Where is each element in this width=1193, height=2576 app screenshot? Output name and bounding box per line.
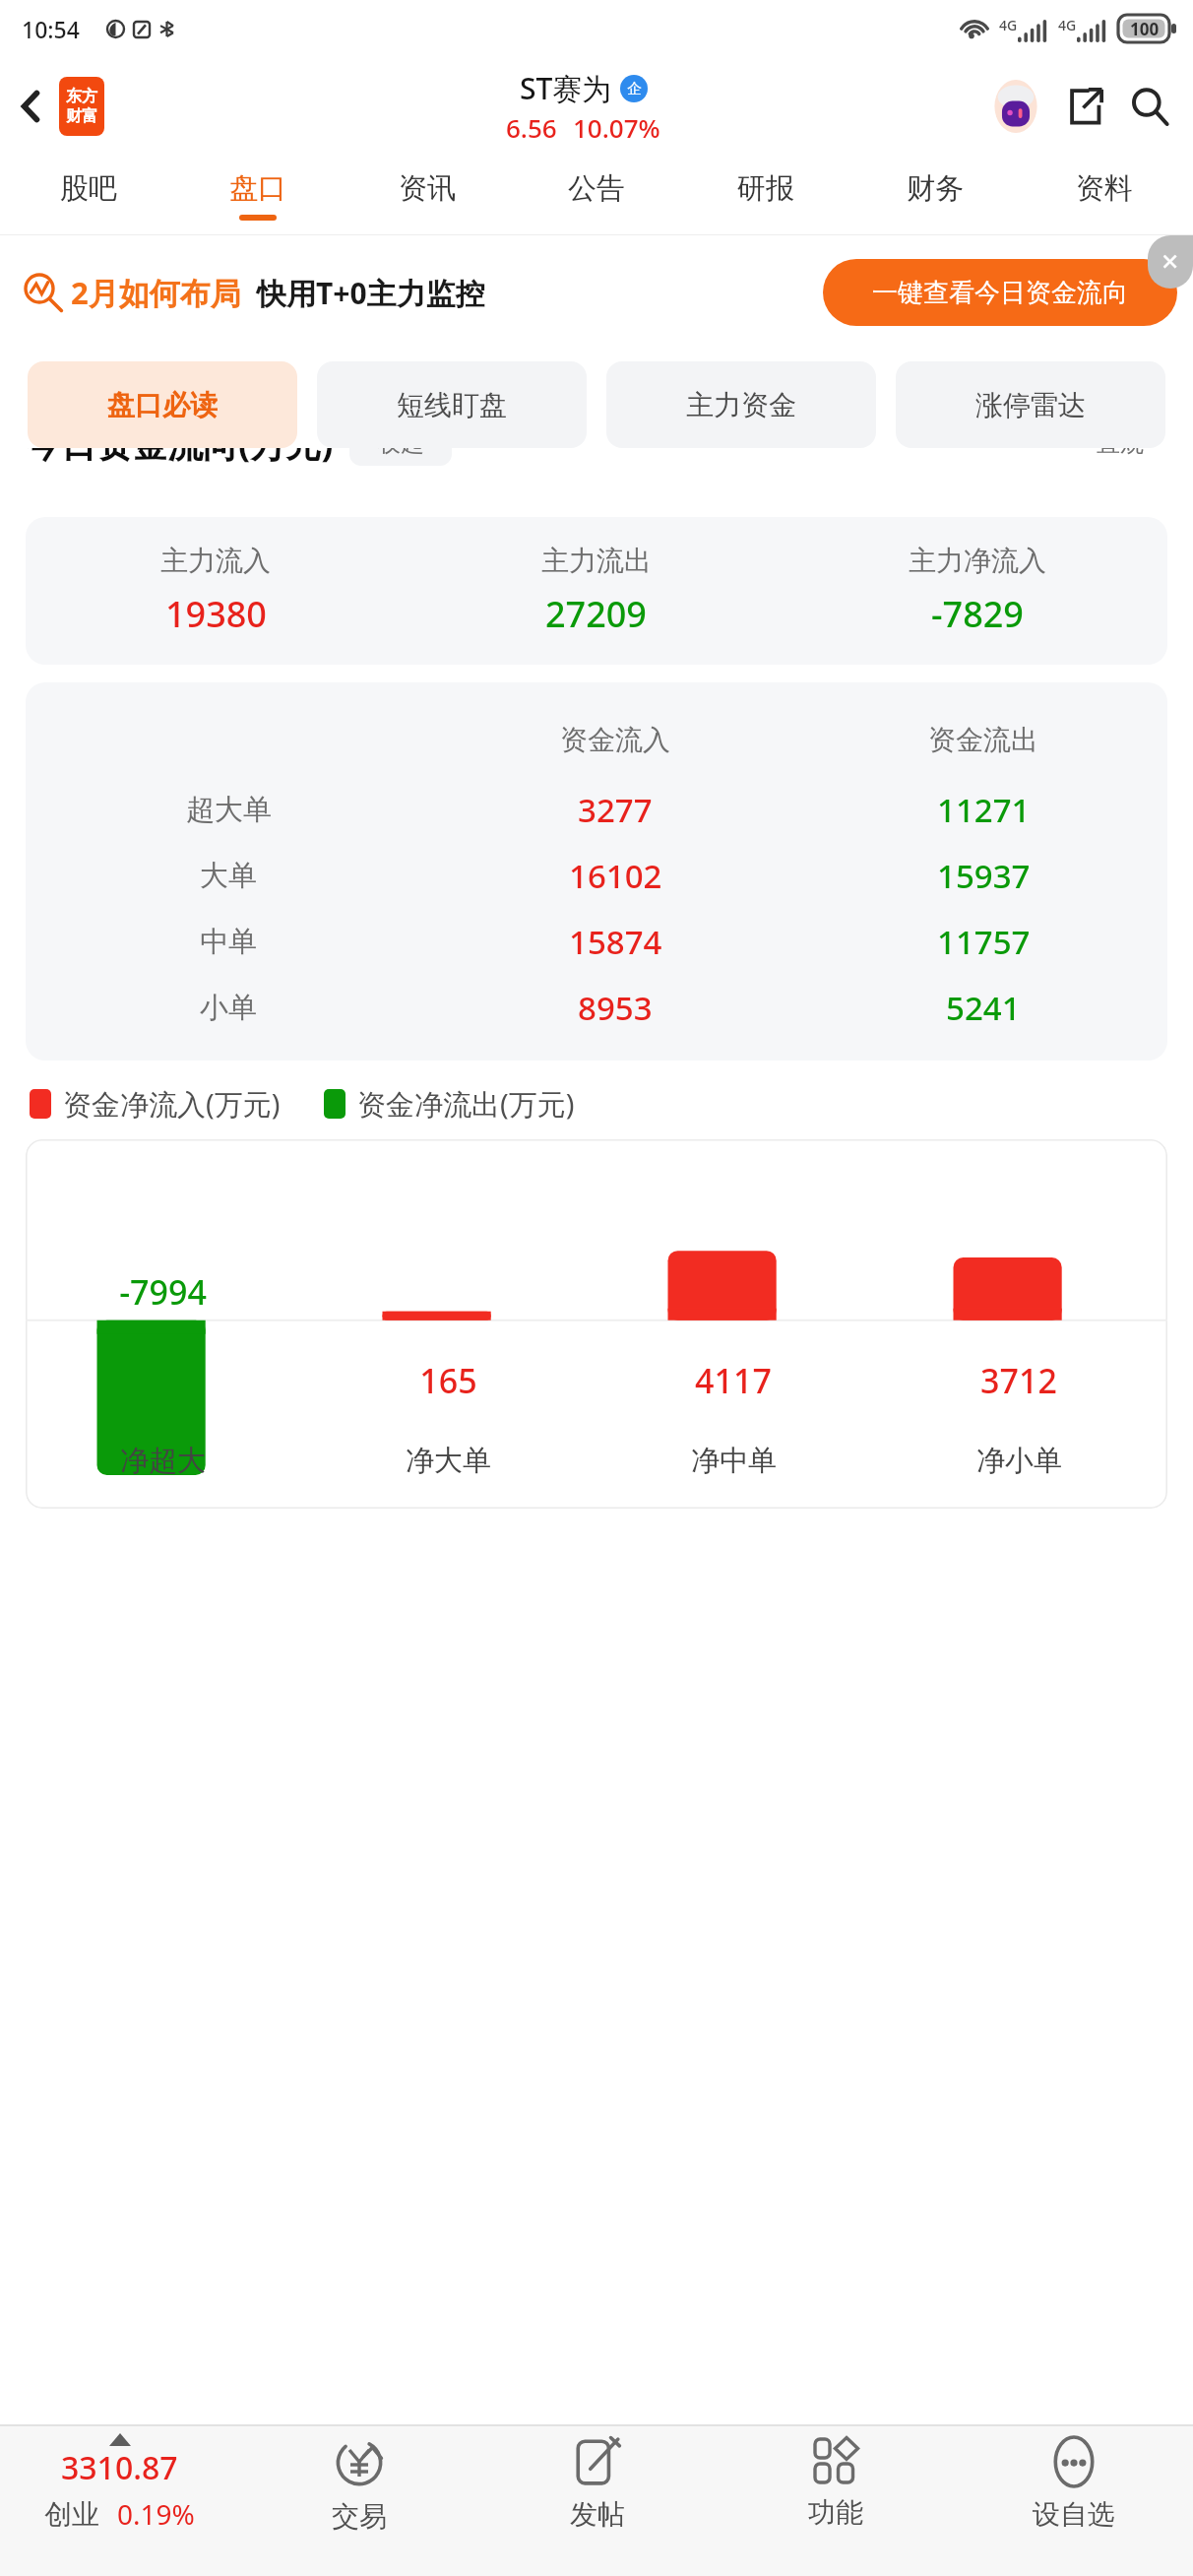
- staticText: 净大单: [406, 1443, 491, 1479]
- button[interactable]: 交易: [239, 2426, 478, 2576]
- staticText: 盘口必读: [107, 388, 218, 422]
- staticText: 中单: [200, 924, 257, 960]
- button[interactable]: 东方: [59, 77, 104, 136]
- staticText: 主力流出: [541, 544, 652, 578]
- staticText: 资金净流入(万元): [63, 1084, 281, 1124]
- staticText: 8953: [578, 986, 653, 1030]
- staticText: -7994: [119, 1269, 207, 1315]
- button[interactable]: 盘口: [173, 156, 343, 234]
- staticText: 净中单: [691, 1443, 777, 1479]
- button[interactable]: 资料: [1020, 156, 1189, 234]
- staticText: 净小单: [976, 1443, 1062, 1479]
- button[interactable]: 公告: [512, 156, 681, 234]
- button[interactable]: 股吧: [4, 156, 173, 234]
- staticText: 收起: [377, 448, 424, 458]
- button[interactable]: Search: [1122, 79, 1177, 134]
- button[interactable]: 超大单: [26, 777, 1167, 843]
- staticText: 短线盯盘: [397, 388, 507, 422]
- staticText: 东方: [66, 87, 97, 106]
- button[interactable]: 资讯: [343, 156, 512, 234]
- staticText: 10:54: [22, 14, 80, 44]
- staticText: 19380: [165, 590, 267, 638]
- staticText: 主力净流入: [909, 544, 1046, 578]
- staticText: 快用T+0主力监控: [257, 273, 485, 313]
- button[interactable]: 功能: [717, 2426, 955, 2576]
- button[interactable]: 3310.87: [0, 2426, 239, 2576]
- button[interactable]: Close ad: [1148, 235, 1193, 289]
- staticText: 主力流入: [160, 544, 271, 578]
- staticText: 资讯: [399, 170, 456, 207]
- staticText: 一键查看今日资金流向: [872, 277, 1128, 309]
- staticText: 设自选: [1033, 2497, 1115, 2532]
- staticText: 0.19%: [117, 2495, 195, 2533]
- staticText: 今日资金流向(万元): [26, 448, 334, 468]
- staticText: 财务: [907, 170, 964, 207]
- staticText: 2月如何布局: [71, 272, 241, 313]
- button[interactable]: 盘口必读: [28, 361, 297, 448]
- staticText: 直观: [1097, 448, 1144, 458]
- staticText: 大单: [200, 858, 257, 894]
- staticText: 股吧: [60, 170, 117, 207]
- staticText: 4G: [999, 16, 1018, 34]
- staticText: 发帖: [570, 2497, 625, 2532]
- staticText: 5241: [946, 986, 1021, 1030]
- staticText: 功能: [808, 2495, 863, 2530]
- staticText: 4117: [695, 1358, 772, 1403]
- staticText: 主力资金: [686, 388, 796, 422]
- staticText: 小单: [200, 990, 257, 1026]
- staticText: 3310.87: [61, 2446, 178, 2489]
- staticText: 交易: [332, 2499, 387, 2534]
- button[interactable]: 设自选: [955, 2426, 1193, 2576]
- staticText: 超大单: [186, 792, 272, 828]
- staticText: 盘口: [229, 170, 286, 207]
- staticText: 涨停雷达: [975, 388, 1086, 422]
- button[interactable]: -7994: [26, 1139, 1167, 1509]
- staticText: 6.56: [506, 110, 557, 145]
- staticText: ST赛为: [520, 68, 612, 108]
- staticText: 资金流出: [928, 723, 1038, 757]
- staticText: 研报: [737, 170, 794, 207]
- staticText: 财富: [66, 106, 97, 126]
- button[interactable]: AI assistant: [986, 77, 1045, 136]
- button[interactable]: 一键查看今日资金流向: [823, 259, 1177, 326]
- staticText: 100: [1130, 18, 1160, 40]
- staticText: 创业: [44, 2497, 99, 2532]
- staticText: -7829: [931, 590, 1024, 638]
- button[interactable]: 涨停雷达: [896, 361, 1165, 448]
- staticText: 3277: [578, 788, 653, 832]
- staticText: 11271: [937, 788, 1031, 832]
- staticText: 165: [419, 1358, 477, 1403]
- staticText: 资金流入: [560, 723, 670, 757]
- staticText: 16102: [569, 854, 662, 898]
- button[interactable]: 收起: [349, 448, 452, 466]
- button[interactable]: 主力资金: [606, 361, 876, 448]
- button[interactable]: 研报: [681, 156, 850, 234]
- button[interactable]: 小单: [26, 975, 1167, 1041]
- button[interactable]: 中单: [26, 909, 1167, 975]
- staticText: 净超大: [120, 1443, 206, 1479]
- staticText: 企: [627, 80, 642, 98]
- button[interactable]: 直观: [1073, 448, 1167, 468]
- staticText: 资料: [1076, 170, 1133, 207]
- button[interactable]: Back: [6, 82, 55, 131]
- button[interactable]: 大单: [26, 843, 1167, 909]
- staticText: 10.07%: [573, 110, 660, 145]
- button[interactable]: 财务: [850, 156, 1020, 234]
- staticText: 15874: [569, 920, 662, 964]
- staticText: 27209: [545, 590, 647, 638]
- staticText: 3712: [980, 1358, 1057, 1403]
- staticText: ✕: [1161, 249, 1180, 276]
- staticText: 公告: [568, 170, 625, 207]
- staticText: 资金净流出(万元): [357, 1084, 575, 1124]
- staticText: 15937: [937, 854, 1031, 898]
- button[interactable]: Share: [1057, 79, 1112, 134]
- button[interactable]: 发帖: [478, 2426, 717, 2576]
- staticText: 4G: [1058, 16, 1077, 34]
- button[interactable]: 短线盯盘: [317, 361, 587, 448]
- staticText: 11757: [937, 920, 1031, 964]
